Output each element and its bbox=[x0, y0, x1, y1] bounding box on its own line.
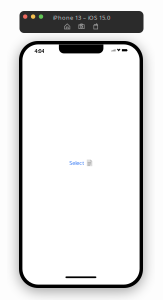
button[interactable]: Select bbox=[22, 157, 140, 169]
staticText: iPhone 13 – iOS 15.0 bbox=[53, 14, 110, 21]
button[interactable]: Rotate bbox=[93, 23, 99, 30]
button[interactable]: Screenshot bbox=[78, 23, 84, 30]
button[interactable]: Home bbox=[64, 23, 70, 30]
staticText: 4:04 bbox=[34, 47, 44, 54]
staticText: Select bbox=[69, 159, 84, 167]
